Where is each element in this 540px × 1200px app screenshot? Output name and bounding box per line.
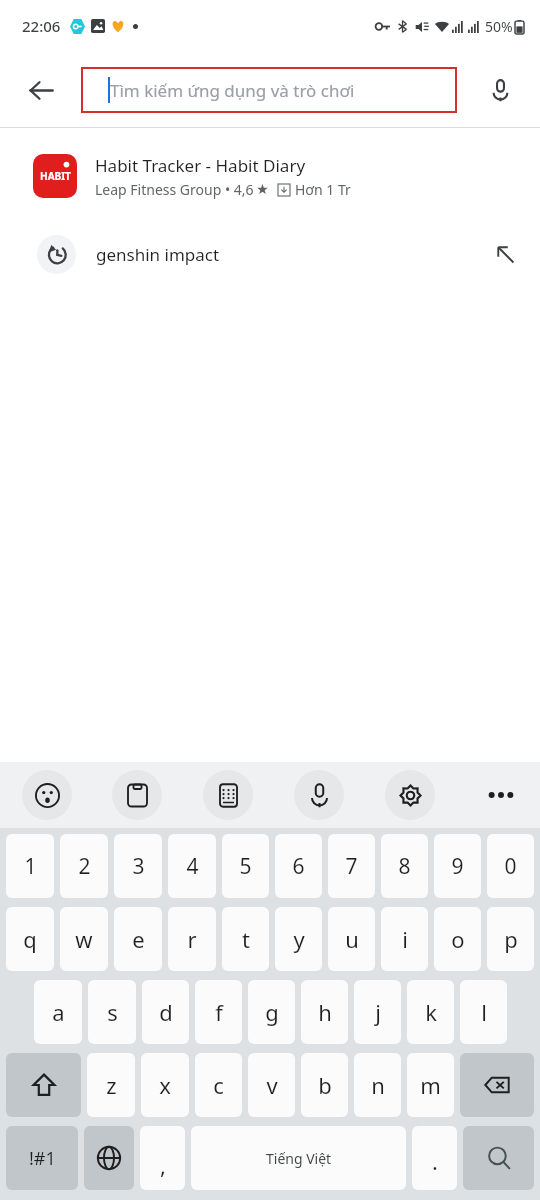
button[interactable]: v [248, 1053, 295, 1117]
staticText: HABIT [40, 169, 71, 183]
button[interactable]: s [88, 980, 136, 1044]
button[interactable]: Tìm kiếm ứng dụng và trò chơi [81, 67, 457, 113]
staticText: Tiếng Việt [266, 1149, 332, 1168]
staticText: y [293, 924, 305, 954]
button[interactable]: Shift [6, 1053, 81, 1117]
button[interactable]: e [114, 907, 162, 971]
button[interactable]: 5 [222, 834, 269, 898]
staticText: d [159, 997, 173, 1027]
button[interactable]: f [195, 980, 242, 1044]
staticText: u [345, 924, 359, 954]
button[interactable]: . [412, 1126, 457, 1190]
button[interactable]: Back [14, 63, 68, 117]
staticText: genshin impact [96, 243, 220, 266]
button[interactable]: 0 [487, 834, 534, 898]
button[interactable]: HABIT [0, 145, 540, 207]
staticText: v [266, 1070, 278, 1100]
button[interactable]: k [407, 980, 454, 1044]
button[interactable]: u [328, 907, 375, 971]
button[interactable]: w [60, 907, 108, 971]
staticText: Tìm kiếm ứng dụng và trò chơi [110, 79, 355, 102]
button[interactable]: Change language [84, 1126, 134, 1190]
button[interactable]: a [34, 980, 82, 1044]
button[interactable]: p [487, 907, 534, 971]
staticText: Hơn 1 Tr [295, 180, 351, 199]
button[interactable]: More options [476, 770, 526, 820]
staticText: t [242, 924, 250, 954]
button[interactable]: Insert suggestion [482, 231, 528, 277]
button[interactable]: 4 [168, 834, 216, 898]
staticText: h [318, 997, 332, 1027]
button[interactable]: 7 [328, 834, 375, 898]
staticText: j [375, 997, 381, 1027]
button[interactable]: Tiếng Việt [191, 1126, 406, 1190]
button[interactable]: 1 [6, 834, 54, 898]
staticText: z [106, 1070, 117, 1100]
button[interactable]: genshin impact [0, 227, 540, 281]
staticText: 50% [485, 17, 513, 36]
staticText: 1 [24, 852, 37, 881]
button[interactable]: !#1 [6, 1126, 78, 1190]
staticText: 9 [451, 852, 464, 881]
staticText: 8 [398, 852, 411, 881]
button[interactable]: g [248, 980, 295, 1044]
staticText: g [265, 997, 279, 1027]
button[interactable]: d [142, 980, 189, 1044]
staticText: x [159, 1070, 171, 1100]
staticText: 22:06 [22, 16, 61, 36]
button[interactable]: Emoji [22, 770, 72, 820]
button[interactable]: h [301, 980, 348, 1044]
staticText: 6 [292, 852, 305, 881]
staticText: 3 [132, 852, 145, 881]
button[interactable]: One-hand mode [203, 770, 253, 820]
button[interactable]: l [460, 980, 507, 1044]
staticText: . [432, 1146, 438, 1176]
staticText: o [451, 924, 465, 954]
staticText: p [504, 924, 518, 954]
button[interactable]: j [354, 980, 401, 1044]
staticText: , [160, 1150, 166, 1180]
button[interactable]: 3 [114, 834, 162, 898]
button[interactable]: z [87, 1053, 135, 1117]
staticText: !#1 [29, 1146, 56, 1171]
button[interactable]: Clipboard [112, 770, 162, 820]
button[interactable]: r [168, 907, 216, 971]
button[interactable]: , [140, 1126, 185, 1190]
button[interactable]: 2 [60, 834, 108, 898]
button[interactable]: 9 [434, 834, 481, 898]
staticText: q [23, 924, 37, 954]
button[interactable]: n [354, 1053, 401, 1117]
button[interactable]: Settings [385, 770, 435, 820]
button[interactable]: m [407, 1053, 454, 1117]
staticText: Habit Tracker - Habit Diary [95, 154, 306, 177]
staticText: 4 [186, 852, 199, 881]
staticText: 0 [504, 852, 517, 881]
button[interactable]: Backspace [460, 1053, 534, 1117]
staticText: l [481, 997, 487, 1027]
button[interactable]: i [381, 907, 428, 971]
button[interactable]: b [301, 1053, 348, 1117]
staticText: s [107, 997, 118, 1027]
button[interactable]: 6 [275, 834, 322, 898]
staticText: 2 [78, 852, 91, 881]
staticText: m [420, 1070, 441, 1100]
staticText: 7 [345, 852, 358, 881]
button[interactable]: Search [463, 1126, 534, 1190]
button[interactable]: t [222, 907, 269, 971]
staticText: c [213, 1070, 224, 1100]
button[interactable]: Voice input [294, 770, 344, 820]
button[interactable]: q [6, 907, 54, 971]
staticText: 5 [239, 852, 252, 881]
button[interactable]: Voice search [474, 64, 526, 116]
staticText: a [52, 997, 65, 1027]
staticText: k [425, 997, 437, 1027]
staticText: i [402, 924, 408, 954]
button[interactable]: x [141, 1053, 189, 1117]
staticText: e [132, 924, 145, 954]
button[interactable]: 8 [381, 834, 428, 898]
button[interactable]: o [434, 907, 481, 971]
button[interactable]: y [275, 907, 322, 971]
staticText: b [318, 1070, 332, 1100]
button[interactable]: c [195, 1053, 242, 1117]
staticText: w [75, 924, 93, 954]
